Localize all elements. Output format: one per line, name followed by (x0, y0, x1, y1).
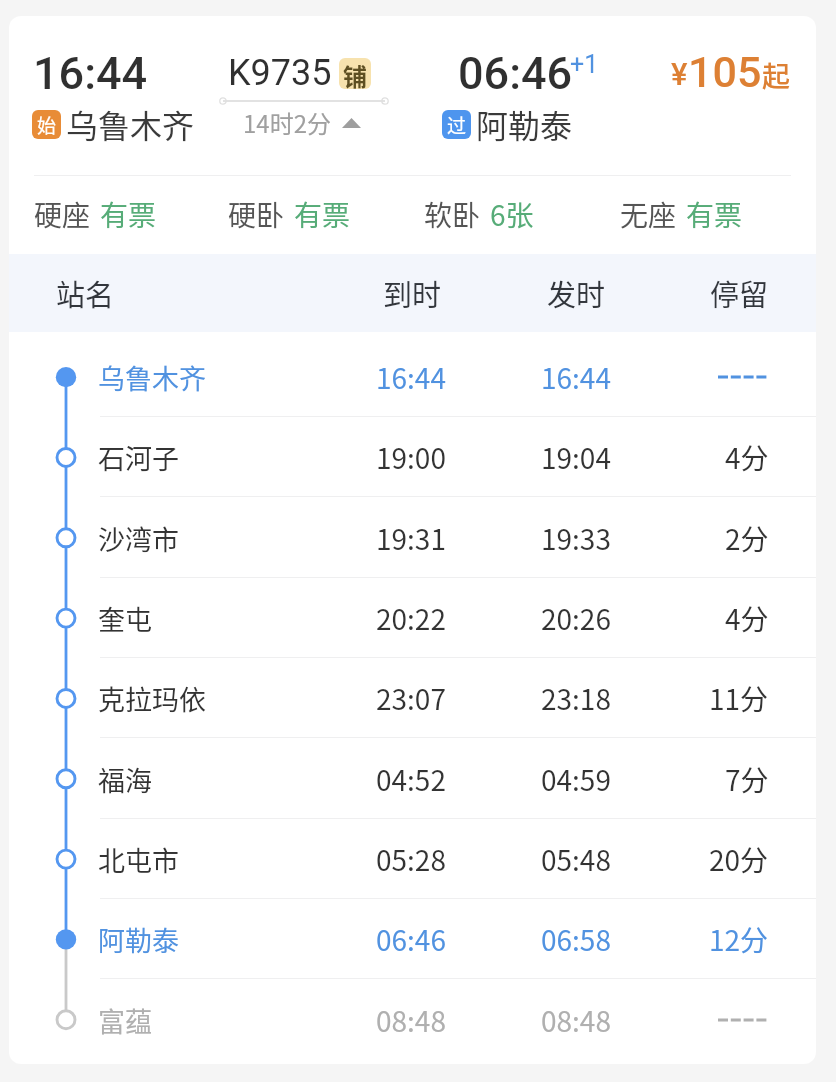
staticText: 08:48 (376, 1000, 446, 1041)
staticText: 4分 (725, 437, 769, 478)
staticText: 6张 (490, 194, 534, 235)
staticText: 沙湾市 (98, 519, 179, 558)
staticText: 06:58 (541, 919, 611, 960)
staticText: 有票 (294, 194, 351, 235)
staticText: 克拉玛依 (98, 679, 206, 718)
staticText: 05:48 (541, 839, 611, 880)
button[interactable]: 乌鲁木齐 (9, 337, 816, 417)
staticText: 06:46 (376, 919, 446, 960)
button[interactable]: 石河子 (9, 417, 816, 497)
staticText: 奎屯 (98, 599, 152, 638)
staticText: 4分 (725, 598, 769, 639)
staticText: 19:33 (541, 518, 611, 559)
staticText: 08:48 (541, 1000, 611, 1041)
staticText: 23:18 (541, 678, 611, 719)
staticText: 停留 (710, 272, 769, 314)
staticText: 04:59 (541, 759, 611, 800)
staticText: +1 (570, 50, 599, 79)
staticText: 乌鲁木齐 (98, 358, 206, 397)
button[interactable]: 无座 (620, 194, 794, 235)
button[interactable]: 福海 (9, 739, 816, 819)
button[interactable]: 沙湾市 (9, 498, 816, 578)
staticText: 04:52 (376, 759, 446, 800)
staticText: 有票 (100, 194, 157, 235)
button[interactable]: 奎屯 (9, 578, 816, 658)
staticText: 20:22 (376, 598, 446, 639)
staticText: 阿勒泰 (98, 920, 179, 959)
staticText: 2分 (725, 518, 769, 559)
staticText: 19:04 (541, 437, 611, 478)
staticText: 发时 (547, 272, 606, 314)
staticText: 石河子 (98, 438, 179, 477)
staticText: 06:46 (458, 47, 573, 100)
button[interactable]: 北屯市 (9, 819, 816, 899)
staticText: 站名 (56, 272, 115, 314)
staticText: ¥ (671, 56, 688, 92)
staticText: 19:00 (376, 437, 446, 478)
staticText: 北屯市 (98, 840, 179, 879)
staticText: 福海 (98, 760, 152, 799)
staticText: 20分 (709, 839, 769, 880)
staticText: 105 (688, 47, 762, 97)
staticText: 23:07 (376, 678, 446, 719)
staticText: 05:28 (376, 839, 446, 880)
staticText: 16:44 (376, 357, 446, 398)
button[interactable]: 克拉玛依 (9, 658, 816, 738)
staticText: 富蕴 (98, 1001, 152, 1040)
button[interactable]: 硬座 (34, 194, 228, 235)
staticText: 过 (447, 111, 467, 139)
staticText: 12分 (709, 919, 769, 960)
staticText: 19:31 (376, 518, 446, 559)
button[interactable]: 硬卧 (228, 194, 424, 235)
staticText: 14时2分 (243, 105, 331, 140)
staticText: 16:44 (541, 357, 611, 398)
staticText: 阿勒泰 (476, 101, 573, 147)
staticText: 7分 (725, 759, 769, 800)
staticText: 16:44 (33, 47, 148, 100)
staticText: 始 (37, 111, 57, 139)
button[interactable]: 停留 (709, 254, 769, 332)
staticText: 软卧 (424, 194, 481, 235)
staticText: 硬座 (34, 194, 91, 235)
staticText: K9735 (228, 52, 332, 94)
button[interactable]: 到时 (382, 254, 442, 332)
button[interactable]: 收起途经站 (243, 105, 361, 140)
button[interactable]: 富蕴 (9, 980, 816, 1060)
staticText: 无座 (620, 194, 677, 235)
button[interactable]: 阿勒泰 (9, 899, 816, 979)
staticText: 11分 (709, 678, 769, 719)
button[interactable]: 软卧 (424, 194, 620, 235)
staticText: 铺 (343, 58, 367, 89)
staticText: 到时 (383, 272, 442, 314)
staticText: 硬卧 (228, 194, 285, 235)
button[interactable]: 发时 (546, 254, 606, 332)
staticText: 20:26 (541, 598, 611, 639)
staticText: 起 (762, 55, 791, 96)
staticText: 有票 (686, 194, 743, 235)
staticText: 乌鲁木齐 (66, 101, 195, 147)
